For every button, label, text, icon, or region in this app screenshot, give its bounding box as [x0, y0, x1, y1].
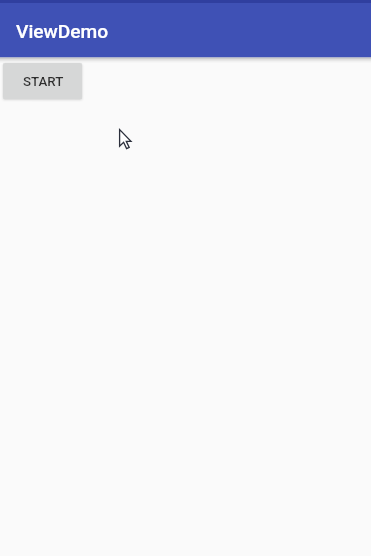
- staticText: START: [23, 74, 64, 90]
- button[interactable]: Start: [3, 63, 82, 99]
- staticText: ViewDemo: [16, 20, 109, 43]
